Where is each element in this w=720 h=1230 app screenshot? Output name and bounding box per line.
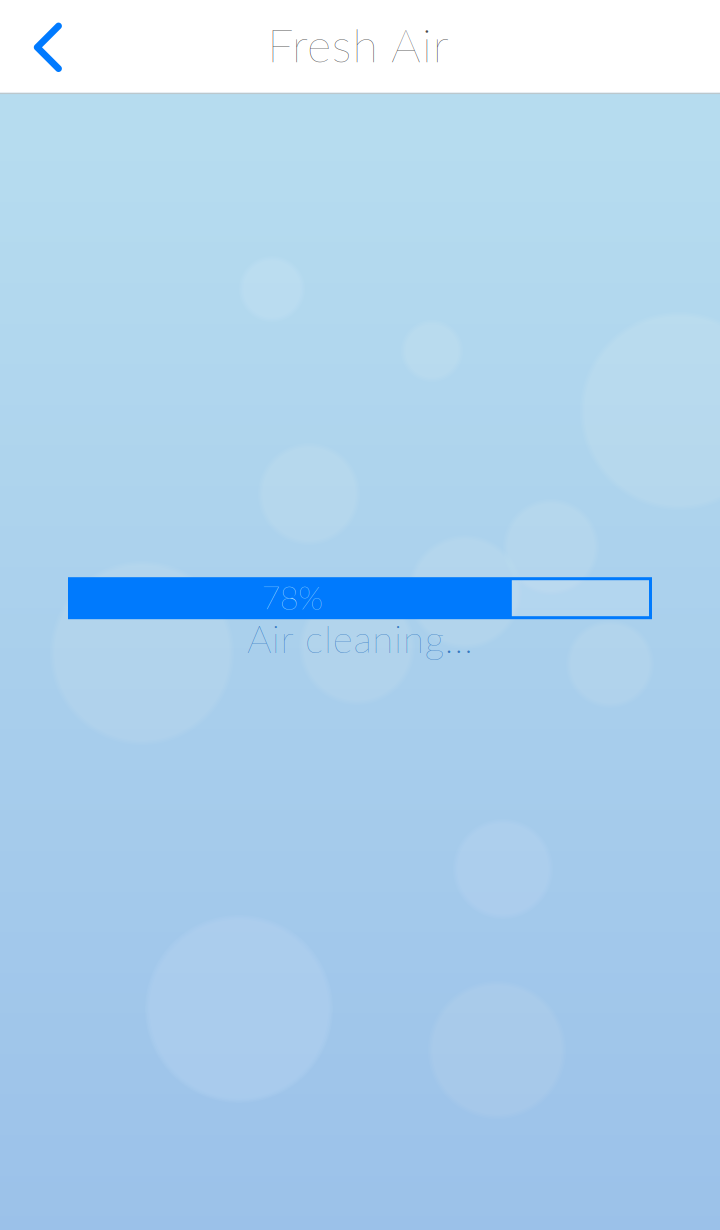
staticText: Air cleaning... xyxy=(247,615,473,661)
button[interactable]: Back xyxy=(0,1,92,93)
staticText: 78% xyxy=(261,578,323,617)
staticText: Fresh Air xyxy=(267,16,449,72)
